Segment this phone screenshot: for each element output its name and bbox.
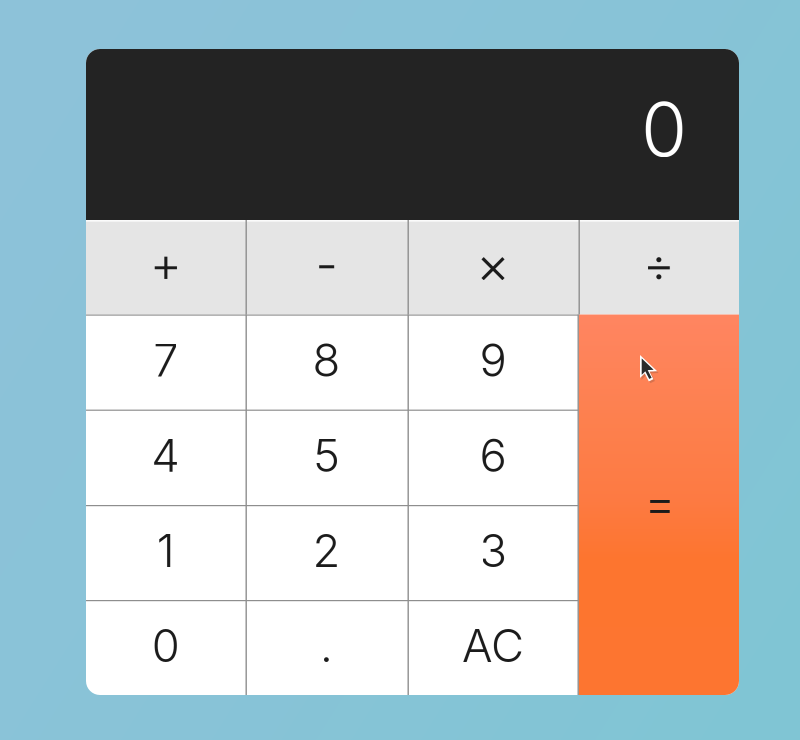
staticText: . bbox=[320, 618, 333, 673]
button[interactable]: 6 bbox=[407, 410, 578, 505]
button[interactable]: 1 bbox=[86, 505, 245, 600]
staticText: 0 bbox=[641, 84, 687, 174]
button[interactable]: 8 bbox=[245, 314, 407, 410]
staticText: × bbox=[476, 233, 510, 296]
staticText: + bbox=[150, 234, 182, 294]
button[interactable]: 5 bbox=[245, 410, 407, 505]
staticText: 1 bbox=[157, 523, 175, 578]
staticText: 0 bbox=[152, 618, 180, 673]
button[interactable]: + bbox=[86, 220, 245, 314]
button[interactable]: 3 bbox=[407, 505, 578, 600]
staticText: 3 bbox=[479, 523, 506, 578]
button[interactable]: 2 bbox=[245, 505, 407, 600]
button[interactable]: - bbox=[245, 220, 407, 314]
staticText: 4 bbox=[151, 428, 180, 483]
staticText: ÷ bbox=[643, 234, 675, 294]
button[interactable]: × bbox=[407, 220, 578, 314]
staticText: - bbox=[315, 234, 337, 294]
staticText: 7 bbox=[153, 333, 178, 387]
button[interactable]: 0 bbox=[86, 600, 245, 695]
staticText: 6 bbox=[479, 428, 506, 483]
staticText: 9 bbox=[479, 333, 506, 387]
button[interactable]: 4 bbox=[86, 410, 245, 505]
staticText: 5 bbox=[313, 428, 340, 483]
staticText: 8 bbox=[312, 333, 340, 387]
staticText: AC bbox=[462, 618, 524, 673]
staticText: 2 bbox=[312, 523, 340, 578]
button[interactable]: . bbox=[245, 600, 407, 695]
button[interactable]: 9 bbox=[407, 314, 578, 410]
button[interactable]: AC bbox=[407, 600, 578, 695]
staticText: = bbox=[644, 473, 675, 531]
button[interactable]: 7 bbox=[86, 314, 245, 410]
button[interactable]: = bbox=[578, 314, 739, 695]
button[interactable]: ÷ bbox=[578, 220, 739, 314]
